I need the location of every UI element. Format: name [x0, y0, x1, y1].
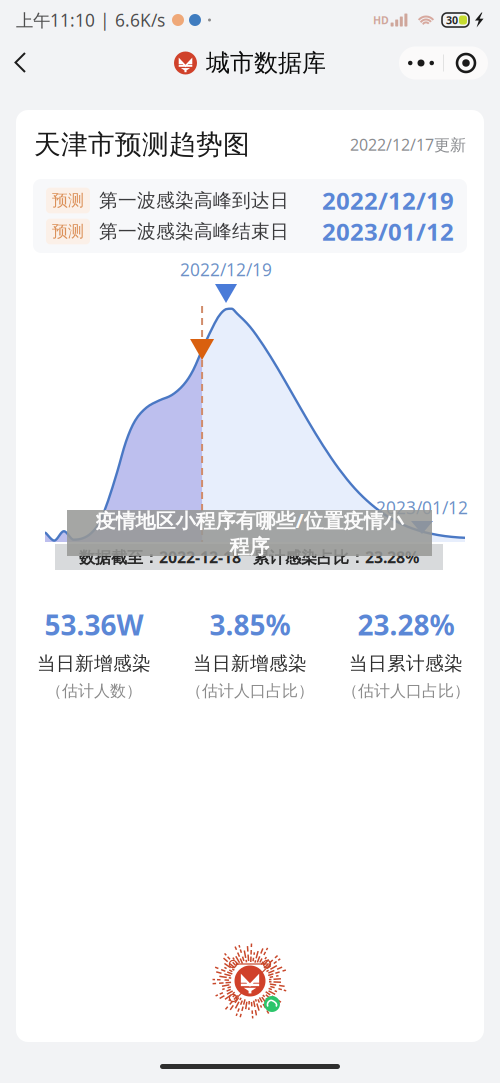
- staticText: 2023/01/12: [322, 216, 454, 247]
- staticText: 数据截至：2022-12-18 累计感染占比：23.28%: [79, 546, 419, 568]
- staticText: HD: [373, 13, 389, 27]
- staticText: 城市数据库: [206, 48, 326, 78]
- button[interactable]: Back: [0, 40, 41, 86]
- staticText: 23.28%: [357, 606, 454, 643]
- staticText: 2022/12/19: [180, 258, 272, 281]
- staticText: 30: [446, 13, 458, 27]
- staticText: 2022/12/17更新: [350, 134, 466, 155]
- staticText: 53.36W: [44, 606, 143, 643]
- button[interactable]: More: [399, 46, 488, 79]
- staticText: 程序: [229, 534, 269, 559]
- staticText: 第一波感染高峰结束日: [99, 220, 289, 243]
- staticText: 2022/12/19: [322, 185, 454, 216]
- staticText: （估计人口占比）: [342, 681, 470, 701]
- staticText: 疫情地区小程序有哪些/位置疫情小: [95, 507, 403, 533]
- staticText: 天津市预测趋势图: [34, 128, 250, 161]
- staticText: （估计人口占比）: [186, 681, 314, 701]
- staticText: 上午11:10 | 6.6K/s: [16, 8, 165, 31]
- staticText: （估计人数）: [46, 681, 142, 701]
- staticText: 当日新增感染: [37, 652, 151, 675]
- staticText: 预测: [52, 222, 84, 241]
- staticText: 当日新增感染: [193, 652, 307, 675]
- staticText: 预测: [52, 191, 84, 210]
- staticText: 2023/01/12: [376, 496, 468, 519]
- staticText: 第一波感染高峰到达日: [99, 189, 289, 212]
- staticText: 当日累计感染: [349, 652, 463, 675]
- staticText: 3.85%: [209, 606, 290, 643]
